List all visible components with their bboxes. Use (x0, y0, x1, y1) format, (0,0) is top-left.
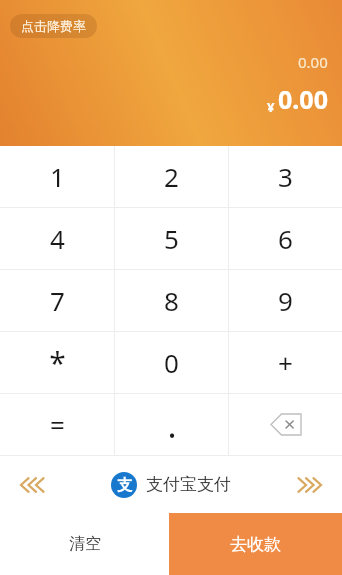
staticText: 2 (164, 159, 179, 194)
button[interactable]: * (0, 332, 114, 393)
button[interactable]: 4 (0, 208, 114, 269)
button[interactable]: Backspace (229, 394, 342, 455)
staticText: ¥ (267, 98, 275, 116)
button[interactable]: 7 (0, 270, 114, 331)
staticText: 支付宝支付 (146, 474, 231, 495)
staticText: 清空 (69, 534, 101, 554)
staticText: 5 (164, 221, 179, 256)
other: Next (297, 476, 327, 494)
staticText: 9 (278, 283, 293, 318)
staticText: = (50, 407, 65, 442)
staticText: . (167, 402, 177, 448)
staticText: 0.00 (278, 82, 328, 116)
staticText: 1 (50, 159, 65, 194)
button[interactable]: + (229, 332, 342, 393)
button[interactable]: 1 (0, 146, 114, 207)
button[interactable]: 8 (115, 270, 228, 331)
staticText: 去收款 (230, 534, 281, 555)
staticText: 0 (164, 345, 179, 380)
staticText: + (278, 345, 293, 380)
button[interactable]: Next (282, 456, 342, 513)
button[interactable]: . (115, 394, 228, 455)
button[interactable]: 6 (229, 208, 342, 269)
button[interactable]: 9 (229, 270, 342, 331)
staticText: 3 (278, 159, 293, 194)
button[interactable]: 点击降费率 (10, 14, 97, 38)
button[interactable]: 2 (115, 146, 228, 207)
button[interactable]: Previous (0, 456, 60, 513)
staticText: 点击降费率 (21, 18, 86, 34)
staticText: 8 (164, 283, 179, 318)
staticText: * (49, 342, 66, 383)
staticText: 7 (50, 283, 65, 318)
staticText: 6 (278, 221, 293, 256)
other: Previous (15, 476, 45, 494)
staticText: 支 (117, 476, 132, 495)
button[interactable]: 去收款 (169, 513, 342, 575)
button[interactable]: 清空 (0, 513, 169, 575)
button[interactable]: 3 (229, 146, 342, 207)
staticText: 0.00 (298, 52, 328, 72)
staticText: 4 (50, 221, 65, 256)
button[interactable]: 5 (115, 208, 228, 269)
button[interactable]: 0 (115, 332, 228, 393)
button[interactable]: = (0, 394, 114, 455)
button[interactable]: 支 (60, 456, 282, 513)
